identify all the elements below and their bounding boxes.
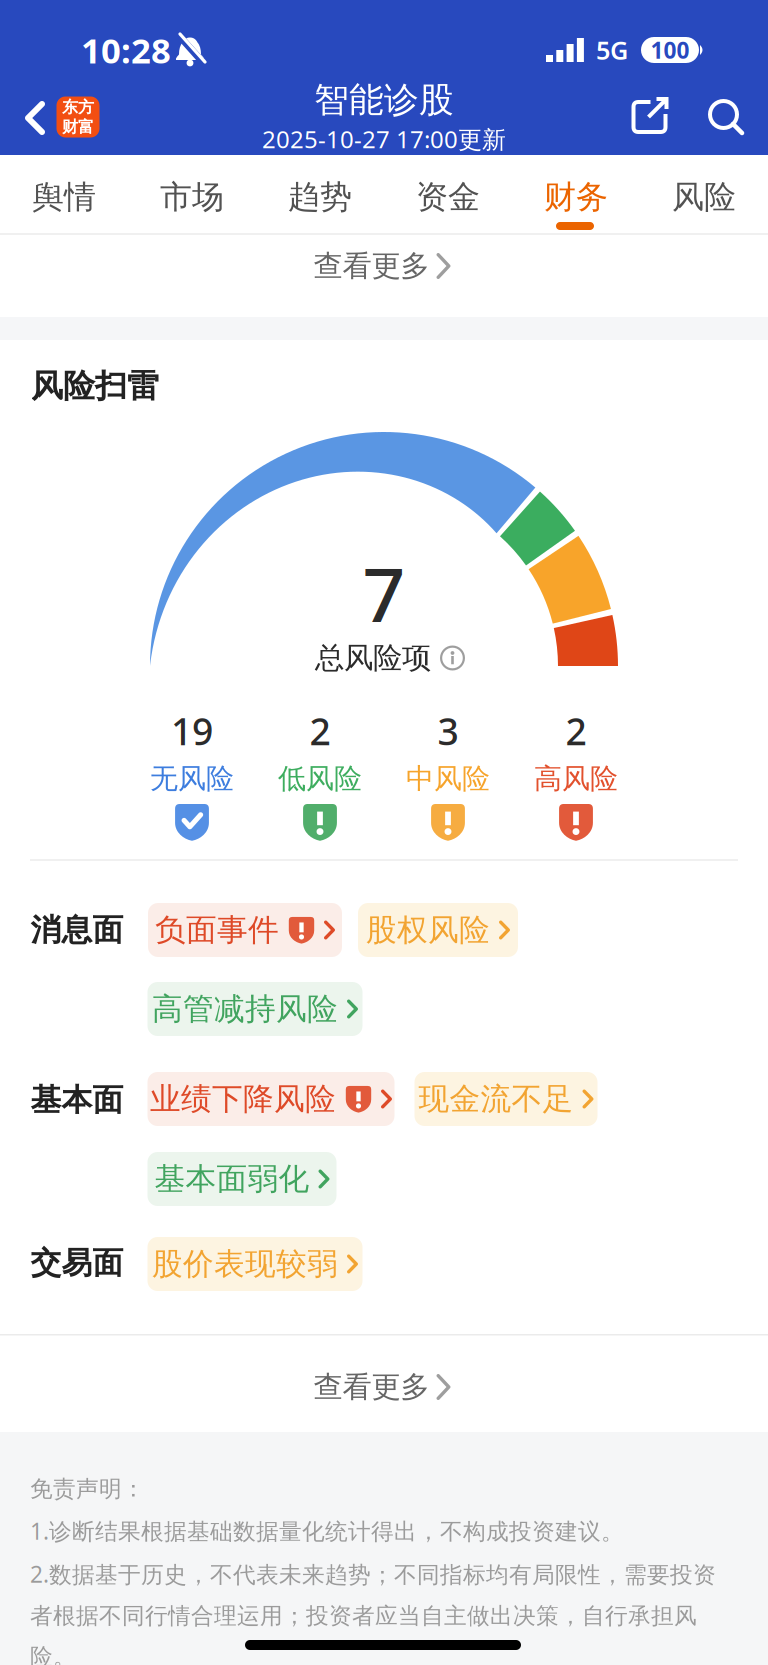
button[interactable]: 股权风险 (358, 903, 518, 957)
staticText: 智能诊股 (314, 79, 454, 121)
staticText: 基本面 (30, 1081, 123, 1119)
button[interactable]: 东方财富 (56, 96, 99, 137)
staticText: 10:28 (81, 27, 171, 73)
staticText: 100 (650, 35, 689, 65)
staticText: 2.数据基于历史，不代表未来趋势；不同指标均有局限性，需要投资 (30, 1559, 716, 1589)
staticText: 高风险 (534, 762, 618, 796)
staticText: 东方 (62, 97, 94, 117)
staticText: 免责声明： (30, 1475, 145, 1503)
button[interactable]: 高管减持风险 (147, 982, 362, 1036)
staticText: 股权风险 (366, 911, 490, 949)
staticText: 者根据不同行情合理运用；投资者应当自主做出决策，自行承担风 (30, 1602, 697, 1630)
staticText: 趋势 (288, 177, 352, 217)
button[interactable]: Search (708, 99, 744, 135)
button[interactable]: 市场 (160, 177, 224, 217)
button[interactable]: 查看更多 (313, 248, 450, 284)
button[interactable]: 查看更多 (313, 1369, 450, 1405)
button[interactable]: 风险 (672, 177, 736, 217)
staticText: 风险 (672, 177, 736, 217)
button[interactable]: 股价表现较弱 (147, 1237, 362, 1291)
staticText: 高管减持风险 (152, 990, 338, 1028)
staticText: 查看更多 (313, 248, 429, 284)
staticText: 7 (362, 543, 405, 643)
staticText: 负面事件 (155, 911, 279, 949)
staticText: 低风险 (278, 762, 362, 796)
staticText: 3 (437, 706, 458, 756)
button[interactable]: 负面事件 (148, 903, 342, 957)
button[interactable]: 说明 (440, 645, 465, 670)
staticText: 市场 (160, 177, 224, 217)
staticText: 2025-10-27 17:00更新 (262, 123, 506, 155)
staticText: 无风险 (150, 762, 234, 796)
staticText: 股价表现较弱 (152, 1245, 338, 1283)
staticText: 1.诊断结果根据基础数据量化统计得出，不构成投资建议。 (30, 1516, 624, 1546)
staticText: 19 (171, 706, 213, 756)
button[interactable]: Back (25, 101, 45, 135)
staticText: 5G (596, 33, 628, 67)
button[interactable]: 基本面弱化 (147, 1152, 336, 1206)
staticText: 中风险 (406, 762, 490, 796)
button[interactable]: 趋势 (288, 177, 352, 217)
staticText: 查看更多 (313, 1369, 429, 1405)
staticText: 消息面 (30, 911, 123, 949)
staticText: 总风险项 (315, 640, 431, 676)
staticText: 基本面弱化 (154, 1160, 309, 1198)
staticText: 险。 (30, 1643, 76, 1665)
staticText: 风险扫雷 (31, 366, 159, 406)
staticText: 业绩下降风险 (150, 1080, 336, 1118)
button[interactable]: Share (631, 98, 668, 134)
staticText: 2 (565, 706, 586, 756)
staticText: 资金 (416, 177, 480, 217)
staticText: 财务 (544, 177, 608, 217)
staticText: 2 (309, 706, 330, 756)
staticText: 财富 (62, 117, 94, 137)
staticText: 现金流不足 (418, 1080, 573, 1118)
button[interactable]: 资金 (416, 177, 480, 217)
button[interactable]: 舆情 (32, 177, 96, 217)
staticText: 舆情 (32, 177, 96, 217)
button[interactable]: 财务 (544, 177, 608, 217)
button[interactable]: 业绩下降风险 (147, 1072, 394, 1126)
staticText: 交易面 (30, 1244, 123, 1282)
button[interactable]: 现金流不足 (414, 1072, 597, 1126)
